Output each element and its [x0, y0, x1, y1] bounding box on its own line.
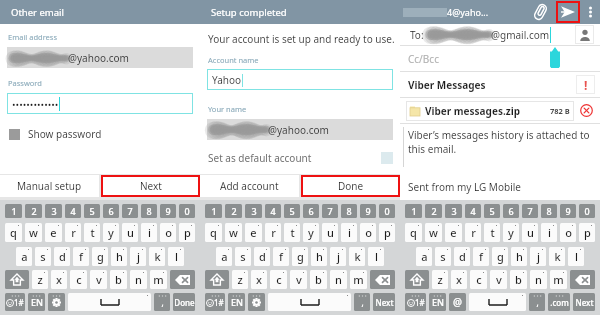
button[interactable]: o [160, 223, 176, 242]
button[interactable]: Settings [48, 293, 65, 311]
button[interactable]: u [122, 223, 138, 242]
button[interactable]: g [292, 247, 308, 266]
button[interactable]: Add account [200, 175, 299, 197]
button[interactable]: k [549, 247, 565, 266]
button[interactable]: m [150, 270, 167, 289]
button[interactable]: Settings [248, 293, 265, 311]
button[interactable]: n [130, 270, 147, 289]
button[interactable]: g [92, 247, 108, 266]
button[interactable]: w [225, 223, 242, 242]
button[interactable]: Next [373, 293, 395, 311]
button[interactable]: y [503, 223, 519, 242]
button[interactable]: c [470, 270, 487, 289]
button[interactable]: u [322, 223, 338, 242]
button[interactable]: l [168, 247, 184, 266]
button[interactable]: Language [429, 293, 446, 311]
button[interactable]: 0 [579, 204, 595, 218]
button[interactable]: 9 [360, 204, 376, 218]
button[interactable]: h [311, 247, 327, 266]
button[interactable]: Next [573, 293, 595, 311]
button[interactable]: 2 [225, 204, 242, 218]
button[interactable]: d [54, 247, 70, 266]
button[interactable]: 8 [541, 204, 557, 218]
button[interactable]: r [265, 223, 281, 242]
button[interactable]: z [432, 270, 448, 289]
button[interactable]: 7 [522, 204, 538, 218]
button[interactable]: Next [101, 175, 200, 197]
button[interactable]: 1 [205, 204, 222, 218]
button[interactable]: y [303, 223, 319, 242]
button[interactable]: Show password [9, 127, 102, 141]
button[interactable]: a [16, 247, 32, 266]
button[interactable]: 7 [122, 204, 138, 218]
button[interactable]: Symbols [205, 293, 225, 311]
button[interactable]: Remove attachment [578, 102, 595, 119]
button[interactable]: Shift [205, 270, 229, 289]
button[interactable]: r [465, 223, 481, 242]
button[interactable]: Language [28, 293, 45, 311]
button[interactable]: 2 [25, 204, 42, 218]
button[interactable]: Symbols [405, 293, 426, 311]
button[interactable]: t [284, 223, 300, 242]
button[interactable]: Send [556, 1, 580, 23]
button[interactable]: 9 [160, 204, 176, 218]
button[interactable]: w [425, 223, 442, 242]
button[interactable]: Choose contact [575, 25, 594, 44]
button[interactable]: 4 [465, 204, 481, 218]
button[interactable]: v [490, 270, 507, 289]
button[interactable]: e [445, 223, 462, 242]
button[interactable]: , [529, 293, 545, 311]
button[interactable]: 6 [103, 204, 119, 218]
button[interactable]: 0 [379, 204, 395, 218]
button[interactable]: Attach file [528, 0, 552, 24]
button[interactable]: b [310, 270, 327, 289]
button[interactable]: i [341, 223, 357, 242]
button[interactable]: s [35, 247, 51, 266]
button[interactable]: f [73, 247, 89, 266]
button[interactable]: Backspace [170, 270, 195, 289]
button[interactable]: m [550, 270, 567, 289]
button[interactable]: b [510, 270, 527, 289]
button[interactable]: w [25, 223, 42, 242]
button[interactable]: i [541, 223, 557, 242]
button[interactable]: r [65, 223, 81, 242]
button[interactable]: i [141, 223, 157, 242]
button[interactable]: s [435, 247, 451, 266]
button[interactable]: Shift [405, 270, 429, 289]
button[interactable]: h [111, 247, 127, 266]
button[interactable]: y [103, 223, 119, 242]
button[interactable]: Viber messages.zip [406, 101, 574, 121]
button[interactable]: f [473, 247, 489, 266]
button[interactable]: c [270, 270, 287, 289]
button[interactable]: t [484, 223, 500, 242]
button[interactable]: q [405, 223, 422, 242]
button[interactable]: x [51, 270, 67, 289]
button[interactable]: @ [449, 293, 466, 311]
button[interactable]: 5 [484, 204, 500, 218]
button[interactable]: l [368, 247, 384, 266]
button[interactable]: c [70, 270, 87, 289]
button[interactable]: 1 [5, 204, 22, 218]
button[interactable]: o [560, 223, 576, 242]
button[interactable]: 7 [322, 204, 338, 218]
button[interactable]: p [179, 223, 195, 242]
button[interactable]: 3 [245, 204, 262, 218]
button[interactable]: n [530, 270, 547, 289]
button[interactable]: v [290, 270, 307, 289]
button[interactable]: Backspace [370, 270, 395, 289]
button[interactable]: m [350, 270, 367, 289]
button[interactable]: a [216, 247, 232, 266]
button[interactable]: q [205, 223, 222, 242]
button[interactable]: t [84, 223, 100, 242]
button[interactable]: p [579, 223, 595, 242]
button[interactable]: e [45, 223, 62, 242]
button[interactable]: Space [469, 293, 526, 311]
button[interactable]: 8 [341, 204, 357, 218]
button[interactable]: v [90, 270, 107, 289]
button[interactable]: Symbols [5, 293, 25, 311]
button[interactable]: h [511, 247, 527, 266]
button[interactable]: Done [301, 175, 400, 197]
button[interactable]: j [330, 247, 346, 266]
button[interactable]: q [5, 223, 22, 242]
button[interactable]: z [232, 270, 248, 289]
